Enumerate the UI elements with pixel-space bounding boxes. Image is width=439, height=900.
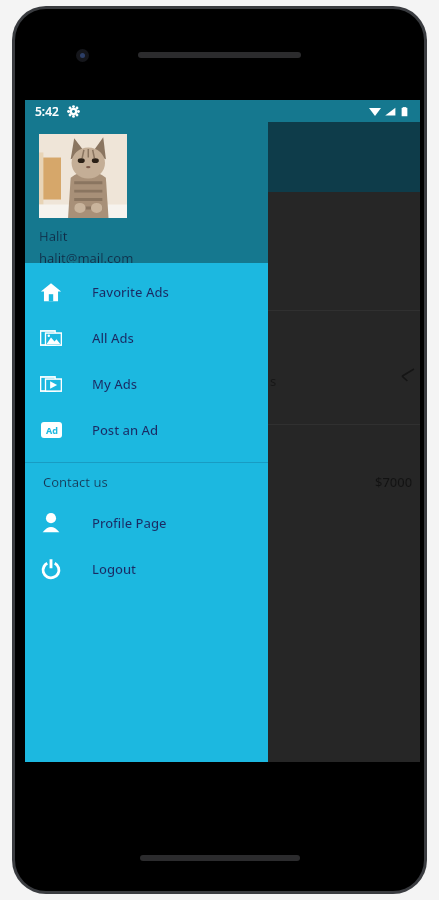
staticText: $7000 bbox=[375, 473, 413, 491]
staticText: Logout bbox=[92, 560, 137, 578]
staticText: Post an Ad bbox=[92, 421, 159, 439]
staticText: Contact us bbox=[43, 473, 108, 491]
other: All Ads bbox=[40, 327, 62, 349]
other: My Ads bbox=[40, 373, 62, 395]
button[interactable]: Favorite Ads bbox=[25, 269, 268, 315]
staticText: Favorite Ads bbox=[92, 283, 169, 301]
staticText: s bbox=[270, 372, 277, 390]
staticText: 5:42 bbox=[35, 103, 59, 119]
staticText: My Ads bbox=[92, 375, 138, 393]
button[interactable]: Post an Ad bbox=[25, 407, 268, 453]
other: Profile Page bbox=[40, 512, 62, 534]
staticText: Halit bbox=[39, 227, 68, 245]
button[interactable]: Halit bbox=[25, 100, 268, 263]
staticText: Profile Page bbox=[92, 514, 167, 532]
staticText: All Ads bbox=[92, 329, 134, 347]
button[interactable]: Profile Page bbox=[25, 500, 268, 546]
staticText: Ad bbox=[46, 424, 58, 436]
other: Favorite Ads bbox=[40, 281, 62, 303]
other: Logout bbox=[40, 558, 62, 580]
button[interactable]: My Ads bbox=[25, 361, 268, 407]
button[interactable]: All Ads bbox=[25, 315, 268, 361]
other: Post an Ad bbox=[40, 419, 62, 441]
staticText: halit@mail.com bbox=[39, 249, 134, 263]
button[interactable]: Logout bbox=[25, 546, 268, 592]
